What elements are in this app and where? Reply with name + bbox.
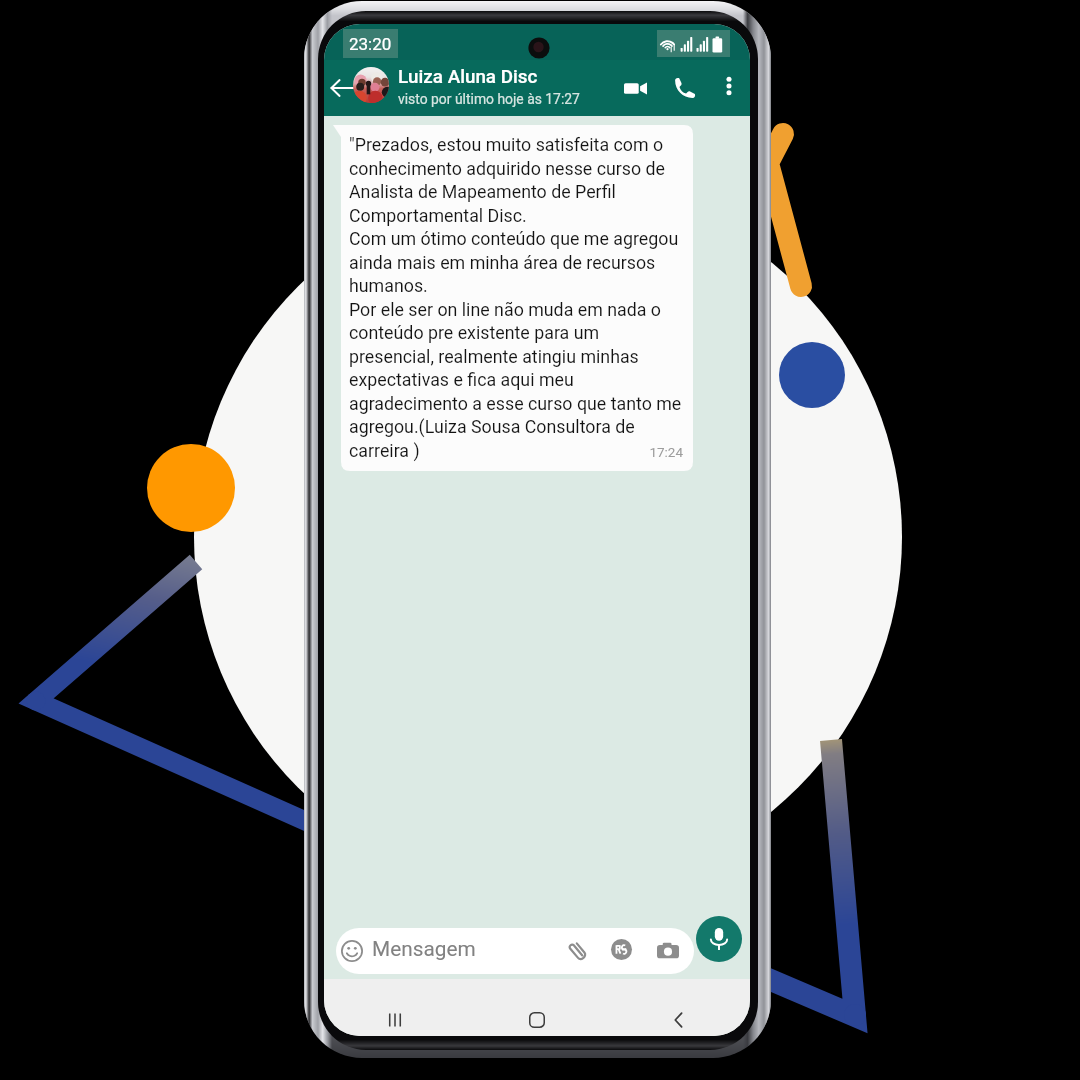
staticText: Com um ótimo conteúdo que me agregou [349,228,679,249]
staticText: Por ele ser on line não muda em nada o [349,299,661,320]
staticText: 23:20 [349,34,392,54]
staticText: presencial, realmente atingiu minhas [349,346,639,367]
button[interactable]: Voice call [669,72,701,104]
staticText: visto por último hoje às 17:27 [398,91,580,107]
button[interactable]: Home [466,999,608,1036]
staticText: expectativas e fica aqui meu [349,369,574,390]
button[interactable]: Back [325,71,359,105]
staticText: Luiza Aluna Disc [398,66,538,88]
staticText: agregou.(Luiza Sousa Consultora de [349,416,635,437]
button[interactable]: Recent apps [324,999,466,1036]
button[interactable]: "Prezados, estou muito satisfeita com o [333,125,693,471]
button[interactable]: Video call [619,72,651,104]
button[interactable]: Luiza Aluna Disc [398,62,613,114]
button[interactable]: More options [715,72,743,100]
button[interactable]: Contact photo [353,67,389,103]
staticText: carreira ) [349,440,420,461]
staticText: humanos. [349,275,428,296]
staticText: ainda mais em minha área de recursos [349,252,656,273]
staticText: Analista de Mapeamento de Perfil [349,181,616,202]
staticText: agradecimento a esse curso que tanto me [349,393,682,414]
button[interactable]: Mensagem [336,928,694,974]
staticText: Comportamental Disc. [349,205,527,226]
button[interactable]: Record voice message [696,916,742,962]
staticText: conteúdo pre existente para um [349,322,600,343]
staticText: Mensagem [372,937,476,961]
button[interactable]: Back [608,999,750,1036]
staticText: 17:24 [649,444,683,460]
staticText: "Prezados, estou muito satisfeita com o [349,134,664,155]
staticText: conhecimento adquirido nesse curso de [349,158,666,179]
